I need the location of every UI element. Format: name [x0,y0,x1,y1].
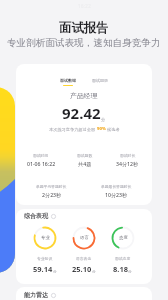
staticText: 综合表现 [24,212,48,220]
button[interactable]: 面试回放 [89,78,111,86]
staticText: 语言表达 [76,256,92,261]
staticText: 01-06 16:22 [27,160,56,167]
staticText: 25.10 [72,264,92,274]
staticText: 分 [101,117,106,122]
staticText: 分 [92,269,96,274]
staticText: 2分23秒 [42,191,62,198]
staticText: 专业剖析面试表现，速知自身竞争力 [7,37,161,49]
staticText: 共4题 [78,160,92,167]
staticText: 能力雷达 [24,291,48,299]
button[interactable]: 综合表现 [24,212,56,220]
other: Info [51,214,56,219]
staticText: 面试时长 [120,153,136,158]
staticText: 92.42 [62,103,101,123]
staticText: 8.18 [113,264,128,274]
staticText: 专业知识 [37,256,53,261]
staticText: 本次练习竞争力超过全国 [49,127,96,132]
staticText: 语言 [80,235,89,241]
staticText: 面试时间 [33,153,49,158]
button[interactable]: 能力雷达 [24,291,56,299]
staticText: 面试回放 [92,78,108,83]
staticText: 专业 [41,235,50,241]
other: Info [51,293,56,298]
staticText: 分 [128,269,132,274]
staticText: 候选者 [107,127,120,132]
staticText: 面试态度 [115,256,131,261]
staticText: 面试报告 [59,20,109,36]
staticText: 态度 [119,235,128,241]
staticText: 34分12秒 [116,160,139,167]
staticText: 单题平均答题时长 [36,184,67,189]
staticText: 面试题数 [77,153,93,158]
staticText: 面试数据 [60,78,76,83]
staticText: 产品经理 [70,91,98,100]
staticText: 59.14 [33,264,53,274]
staticText: 10分23秒 [105,191,128,198]
staticText: 分 [53,269,57,274]
staticText: 单题最长答题时长 [101,184,132,189]
button[interactable]: 面试数据 [57,78,79,86]
staticText: 90% [96,126,107,132]
